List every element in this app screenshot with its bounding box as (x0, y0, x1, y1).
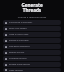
staticText: Find good references (9, 45, 30, 48)
staticText: Rewrite my text (9, 51, 25, 54)
button[interactable]: Expand a short idea (3, 38, 61, 43)
staticText: Write a catchy hook (9, 33, 29, 36)
staticText: Schedule the post (9, 57, 27, 60)
staticText: Open settings (9, 69, 23, 72)
button[interactable]: Rewrite my text (3, 50, 61, 55)
staticText: Generate Threads (0, 3, 64, 13)
button[interactable]: Browse more options (3, 62, 61, 67)
staticText: Browse more options (9, 63, 30, 66)
button[interactable]: Schedule the post (3, 56, 61, 61)
button[interactable]: Open settings (3, 68, 61, 72)
staticText: Expand a short idea (9, 39, 29, 42)
button[interactable]: Draft a full thread (3, 26, 61, 31)
button[interactable]: Write a catchy hook (3, 32, 61, 37)
button[interactable]: Find good references (3, 44, 61, 49)
button[interactable]: Summarize a long topic (3, 20, 61, 25)
staticText: Choose a template below (0, 15, 64, 18)
staticText: Draft a full thread (9, 27, 27, 30)
staticText: Summarize a long topic (9, 21, 33, 24)
